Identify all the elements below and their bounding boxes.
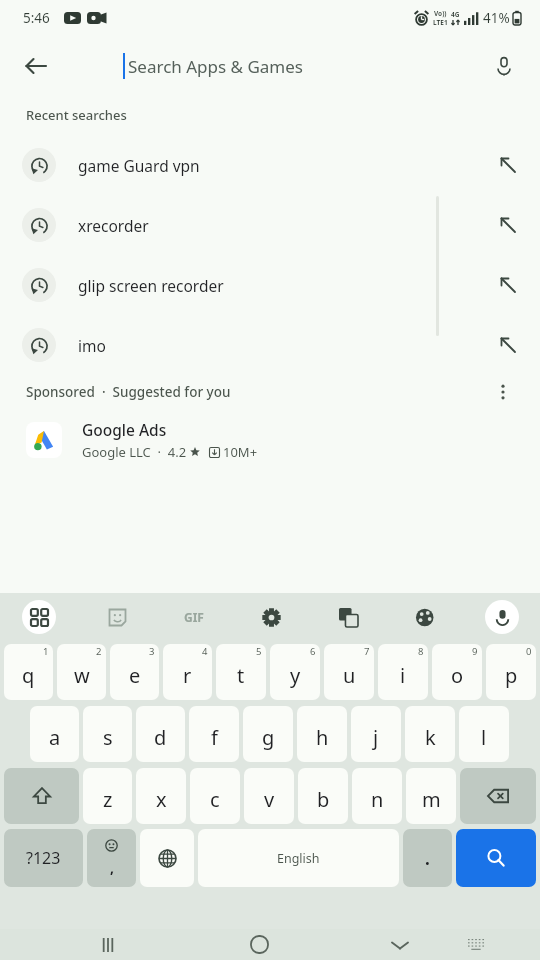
button[interactable]: y <box>270 644 320 700</box>
button[interactable]: v <box>244 768 294 824</box>
button[interactable]: English <box>198 829 399 887</box>
staticText: 6 <box>310 645 316 658</box>
staticText: q <box>22 662 35 689</box>
staticText: 5 <box>256 645 262 658</box>
staticText: k <box>425 724 436 751</box>
staticText: 1 <box>43 645 49 658</box>
button[interactable]: Hide keyboard <box>456 929 496 960</box>
staticText: e <box>129 662 141 689</box>
button[interactable]: Voice input <box>485 600 519 634</box>
button[interactable]: x <box>136 768 186 824</box>
staticText: c <box>210 786 220 813</box>
staticText: h <box>316 724 329 751</box>
staticText: z <box>103 786 113 813</box>
button[interactable]: o <box>432 644 482 700</box>
button[interactable]: Insert imo <box>488 325 528 365</box>
button[interactable]: f <box>189 706 239 762</box>
button[interactable]: Emoji and comma <box>87 829 136 887</box>
staticText: s <box>103 724 113 751</box>
button[interactable]: e <box>110 644 159 700</box>
button[interactable]: glip screen recorder <box>0 255 540 315</box>
staticText: 10M+ <box>223 443 258 461</box>
staticText: m <box>422 786 441 813</box>
staticText: f <box>211 724 218 751</box>
button[interactable]: p <box>486 644 536 700</box>
staticText: r <box>183 662 192 689</box>
staticText: game Guard vpn <box>78 155 200 176</box>
button[interactable]: m <box>406 768 456 824</box>
staticText: 8 <box>418 645 424 658</box>
staticText: i <box>400 662 406 689</box>
staticText: 7 <box>364 645 370 658</box>
staticText: 9 <box>472 645 478 658</box>
button[interactable]: Back <box>14 44 58 88</box>
button[interactable]: Settings <box>254 600 288 634</box>
staticText: 0 <box>526 645 532 658</box>
staticText: a <box>49 724 61 751</box>
button[interactable]: i <box>378 644 428 700</box>
button[interactable]: Google Ads <box>0 409 540 471</box>
button[interactable]: u <box>324 644 374 700</box>
staticText: 4 <box>202 645 208 658</box>
button[interactable]: Stickers <box>100 600 134 634</box>
button[interactable]: Backspace <box>460 768 536 824</box>
staticText: y <box>290 662 301 689</box>
button[interactable]: g <box>243 706 293 762</box>
button[interactable]: game Guard vpn <box>0 135 540 195</box>
staticText: t <box>237 662 245 689</box>
staticText: w <box>74 662 90 689</box>
button[interactable]: Home <box>237 929 281 960</box>
button[interactable]: Insert glip screen recorder <box>488 265 528 305</box>
staticText: LTE1 <box>433 18 448 27</box>
staticText: u <box>343 662 356 689</box>
button[interactable]: ?123 <box>4 829 83 887</box>
button[interactable]: Voice search <box>482 44 526 88</box>
button[interactable]: . <box>403 829 452 887</box>
button[interactable]: Insert game Guard vpn <box>488 145 528 185</box>
button[interactable]: z <box>83 768 132 824</box>
staticText: 41% <box>483 9 510 27</box>
button[interactable]: r <box>163 644 212 700</box>
button[interactable]: Back <box>378 929 422 960</box>
button[interactable]: k <box>405 706 455 762</box>
button[interactable]: a <box>30 706 79 762</box>
staticText: 2 <box>96 645 102 658</box>
button[interactable]: q <box>4 644 53 700</box>
button[interactable]: More options <box>486 375 520 409</box>
staticText: English <box>277 850 320 867</box>
button[interactable]: c <box>190 768 240 824</box>
button[interactable]: Shift <box>4 768 79 824</box>
staticText: . <box>425 847 430 870</box>
button[interactable]: d <box>136 706 185 762</box>
button[interactable]: imo <box>0 315 540 375</box>
staticText: b <box>317 786 330 813</box>
staticText: Vo)) <box>434 9 447 18</box>
staticText: l <box>481 724 487 751</box>
button[interactable]: l <box>459 706 509 762</box>
button[interactable]: b <box>298 768 348 824</box>
staticText: 3 <box>149 645 155 658</box>
staticText: 5:46 <box>23 9 50 27</box>
button[interactable]: Change language <box>140 829 194 887</box>
button[interactable]: h <box>297 706 347 762</box>
button[interactable]: j <box>351 706 401 762</box>
staticText: o <box>451 662 464 689</box>
button[interactable]: Insert xrecorder <box>488 205 528 245</box>
button[interactable]: GIF <box>177 600 211 634</box>
staticText: p <box>505 662 518 689</box>
staticText: glip screen recorder <box>78 275 224 296</box>
button[interactable]: n <box>352 768 402 824</box>
staticText: x <box>156 786 167 813</box>
staticText: g <box>262 724 275 751</box>
button[interactable]: Recent apps <box>86 929 130 960</box>
staticText: Sponsored · Suggested for you <box>26 383 231 401</box>
button[interactable]: t <box>216 644 266 700</box>
button[interactable]: w <box>57 644 106 700</box>
button[interactable]: Search <box>456 829 536 887</box>
button[interactable]: Themes <box>408 600 442 634</box>
button[interactable]: xrecorder <box>0 195 540 255</box>
button[interactable]: s <box>83 706 132 762</box>
button[interactable]: Toolbar <box>22 600 56 634</box>
staticText: ?123 <box>26 847 61 869</box>
button[interactable]: Translate <box>331 600 365 634</box>
